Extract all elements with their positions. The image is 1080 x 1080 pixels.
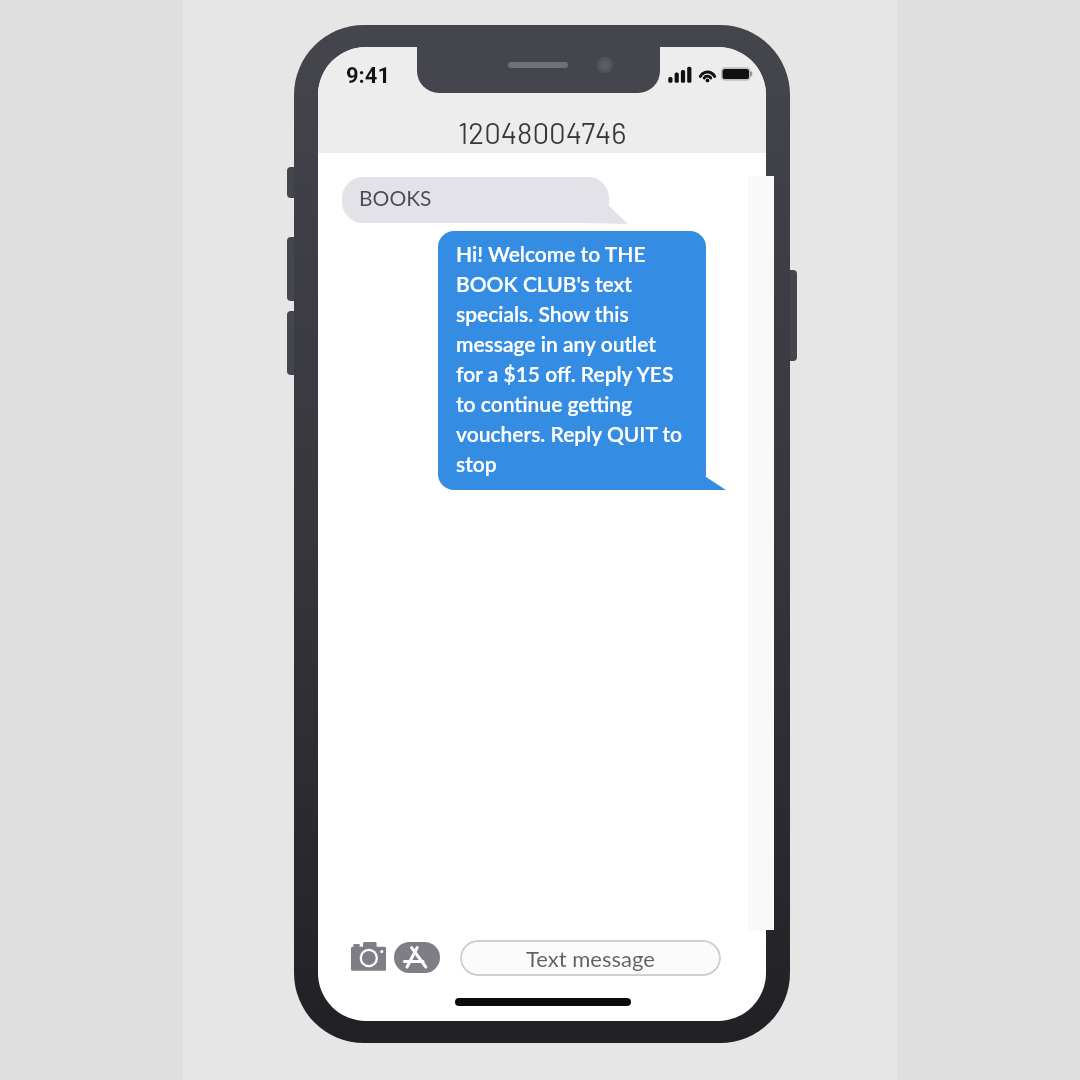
staticText: BOOKS: [359, 185, 432, 210]
staticText: Hi! Welcome to THE BOOK CLUB's text spec…: [456, 241, 683, 476]
button[interactable]: Text message: [460, 940, 721, 976]
button[interactable]: App Store: [394, 942, 440, 973]
staticText: Text message: [526, 945, 655, 971]
button[interactable]: Camera: [351, 942, 387, 972]
staticText: 9:41: [346, 63, 391, 89]
staticText: 12048004746: [458, 114, 627, 149]
